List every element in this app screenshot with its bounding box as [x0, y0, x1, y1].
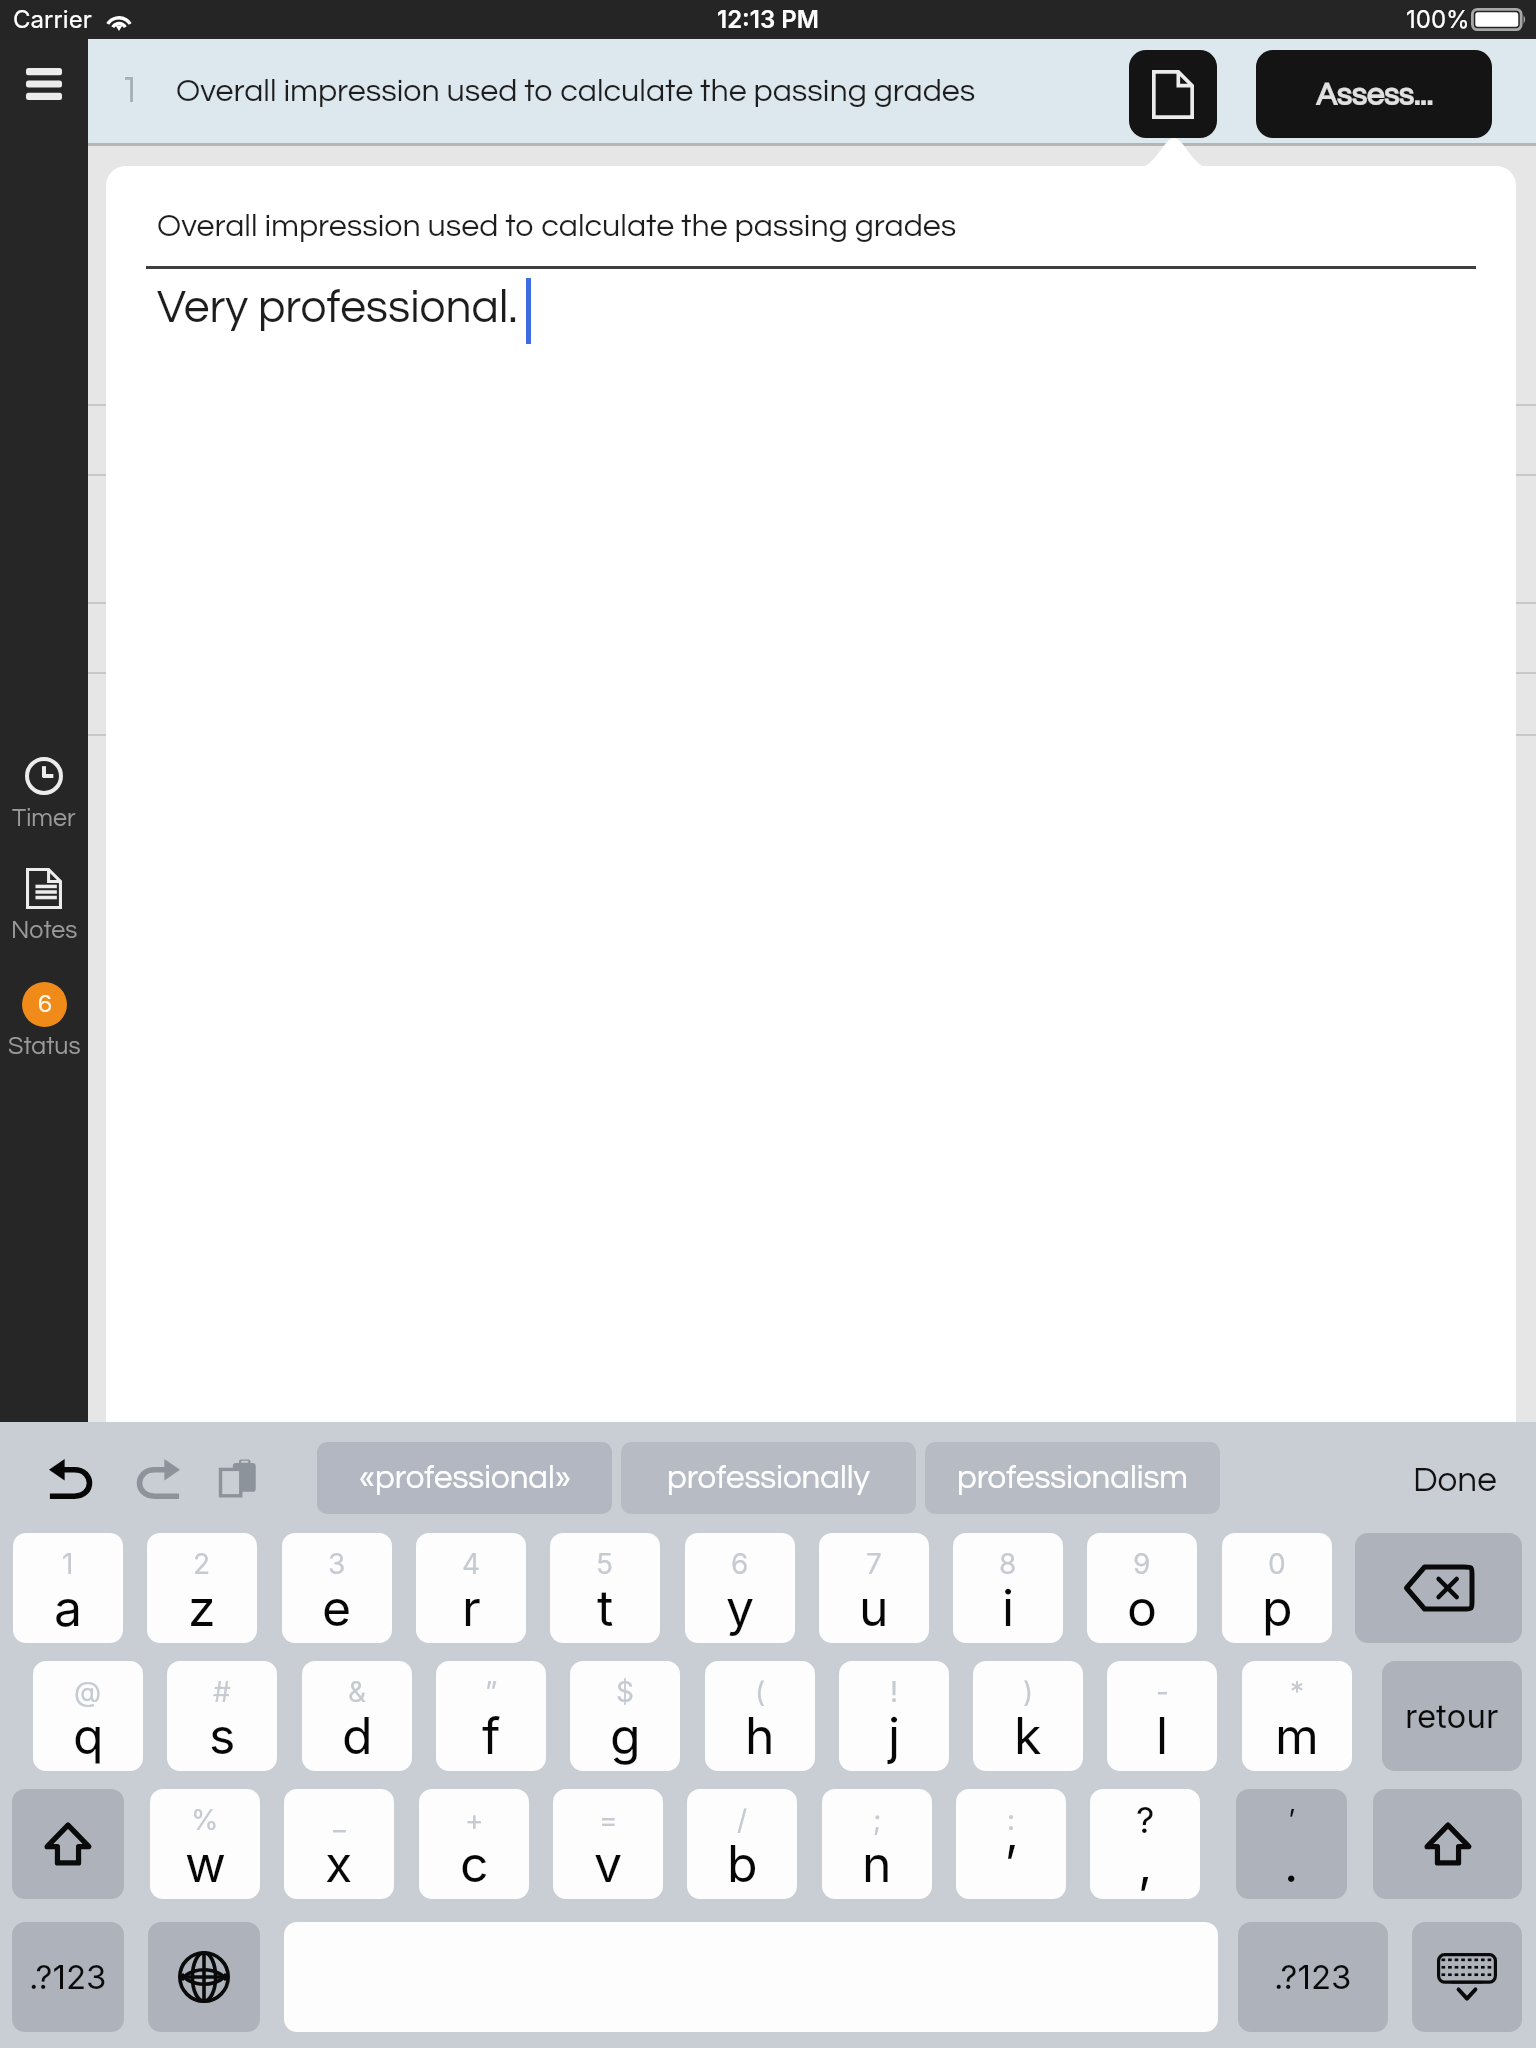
staticText: h: [745, 1706, 775, 1766]
staticText: ?: [1136, 1798, 1155, 1842]
staticText: .: [1284, 1834, 1299, 1894]
button[interactable]: retour: [1382, 1661, 1522, 1771]
button[interactable]: &: [302, 1661, 412, 1771]
staticText: k: [1014, 1706, 1042, 1766]
staticText: ”: [485, 1675, 498, 1709]
staticText: *: [1290, 1675, 1305, 1709]
staticText: retour: [1405, 1696, 1499, 1736]
button[interactable]: Undo: [30, 1444, 114, 1514]
staticText: r: [462, 1578, 481, 1638]
staticText: e: [322, 1578, 352, 1638]
button[interactable]: $: [570, 1661, 680, 1771]
staticText: Very professional.: [157, 284, 518, 331]
staticText: v: [594, 1834, 623, 1894]
staticText: g: [610, 1706, 641, 1766]
staticText: 100%: [1406, 5, 1470, 34]
button[interactable]: Done: [1391, 1450, 1519, 1510]
button[interactable]: 6: [0, 980, 88, 1078]
staticText: a: [54, 1578, 83, 1638]
button[interactable]: 5: [550, 1533, 660, 1643]
button[interactable]: professionalism: [925, 1442, 1220, 1514]
button[interactable]: 2: [147, 1533, 257, 1643]
staticText: Overall impression used to calculate the…: [176, 75, 976, 108]
button[interactable]: Switch language: [148, 1922, 260, 2032]
staticText: l: [1156, 1706, 1169, 1766]
button[interactable]: =: [553, 1789, 663, 1899]
button[interactable]: ’: [1236, 1789, 1347, 1899]
button[interactable]: Shift: [12, 1789, 124, 1899]
staticText: p: [1262, 1578, 1293, 1638]
button[interactable]: ”: [436, 1661, 546, 1771]
staticText: Assess...: [1316, 80, 1433, 112]
button[interactable]: +: [419, 1789, 529, 1899]
staticText: 7: [866, 1547, 882, 1581]
button[interactable]: professionally: [621, 1442, 916, 1514]
button[interactable]: Redo: [115, 1444, 199, 1514]
button[interactable]: /: [687, 1789, 797, 1899]
staticText: f: [482, 1706, 501, 1766]
button[interactable]: _: [284, 1789, 394, 1899]
staticText: Status: [8, 1033, 81, 1059]
staticText: ;: [873, 1803, 882, 1837]
staticText: 1: [62, 1547, 74, 1581]
button[interactable]: *: [1242, 1661, 1352, 1771]
button[interactable]: :: [956, 1789, 1066, 1899]
button[interactable]: %: [150, 1789, 260, 1899]
button[interactable]: .?123: [12, 1922, 124, 2032]
staticText: o: [1127, 1578, 1157, 1638]
staticText: -: [1156, 1675, 1169, 1709]
staticText: y: [726, 1578, 755, 1638]
button[interactable]: (: [705, 1661, 815, 1771]
staticText: 2: [193, 1547, 211, 1581]
button[interactable]: 8: [953, 1533, 1063, 1643]
button[interactable]: 9: [1087, 1533, 1197, 1643]
button[interactable]: Menu: [0, 42, 88, 126]
button[interactable]: Delete: [1355, 1533, 1522, 1643]
staticText: Notes: [11, 917, 78, 943]
button[interactable]: ;: [822, 1789, 932, 1899]
staticText: :: [1007, 1803, 1016, 1837]
staticText: %: [191, 1803, 219, 1837]
button[interactable]: #: [167, 1661, 277, 1771]
button[interactable]: 4: [416, 1533, 526, 1643]
button[interactable]: Notes: [0, 864, 88, 962]
staticText: @: [74, 1675, 102, 1709]
staticText: 1: [120, 72, 141, 110]
button[interactable]: Hide keyboard: [1412, 1922, 1522, 2032]
staticText: 4: [462, 1547, 481, 1581]
staticText: +: [465, 1803, 484, 1837]
staticText: «professional»: [359, 1461, 571, 1495]
staticText: !: [890, 1675, 899, 1709]
staticText: t: [597, 1578, 614, 1638]
staticText: =: [599, 1803, 618, 1837]
button[interactable]: 6: [685, 1533, 795, 1643]
button[interactable]: 7: [819, 1533, 929, 1643]
button[interactable]: Shift: [1373, 1789, 1522, 1899]
staticText: c: [460, 1834, 489, 1894]
button[interactable]: 1: [13, 1533, 123, 1643]
staticText: Timer: [12, 805, 76, 831]
staticText: 3: [328, 1547, 346, 1581]
button[interactable]: «professional»: [317, 1442, 612, 1514]
button[interactable]: Document: [1129, 50, 1217, 138]
button[interactable]: Timer: [0, 752, 88, 850]
button[interactable]: ): [973, 1661, 1083, 1771]
button[interactable]: Assess...: [1256, 50, 1492, 138]
button[interactable]: @: [33, 1661, 143, 1771]
button[interactable]: 0: [1222, 1533, 1332, 1643]
button[interactable]: Paste: [197, 1444, 281, 1514]
button[interactable]: 3: [282, 1533, 392, 1643]
staticText: s: [209, 1706, 236, 1766]
staticText: j: [888, 1706, 901, 1766]
staticText: ’: [1288, 1803, 1296, 1837]
button[interactable]: -: [1107, 1661, 1217, 1771]
staticText: z: [188, 1578, 216, 1638]
button[interactable]: .?123: [1238, 1922, 1388, 2032]
button[interactable]: !: [839, 1661, 949, 1771]
staticText: 0: [1268, 1547, 1286, 1581]
staticText: Overall impression used to calculate the…: [157, 210, 957, 243]
button[interactable]: ?: [1090, 1789, 1200, 1899]
staticText: Carrier: [13, 5, 92, 34]
staticText: 6: [38, 991, 52, 1017]
